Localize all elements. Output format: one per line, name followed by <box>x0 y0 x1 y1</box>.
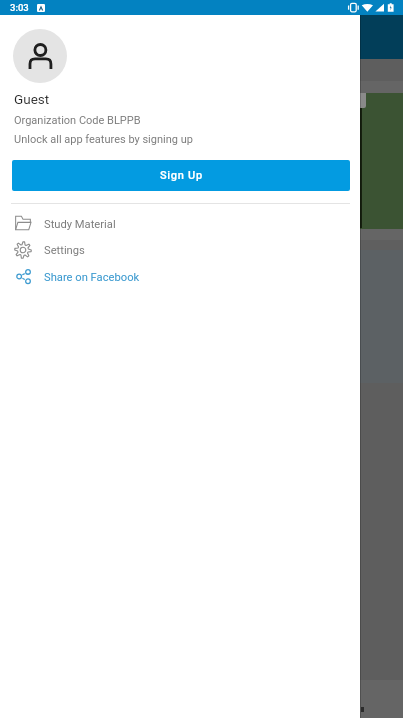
staticText: Unlock all app features by signing up <box>14 133 193 146</box>
staticText: 3:03 <box>10 2 29 13</box>
staticText: Sign Up <box>160 169 203 182</box>
button[interactable]: Study Material <box>0 212 360 238</box>
button[interactable]: Close navigation drawer <box>360 0 403 718</box>
button[interactable]: Share on Facebook <box>0 265 360 291</box>
button[interactable]: Settings <box>0 238 360 264</box>
staticText: Settings <box>44 244 85 257</box>
staticText: Share on Facebook <box>44 271 140 284</box>
staticText: Guest <box>14 91 50 107</box>
staticText: Study Material <box>44 218 116 231</box>
button[interactable]: Sign Up <box>12 160 350 191</box>
staticText: Organization Code BLPPB <box>14 114 141 127</box>
